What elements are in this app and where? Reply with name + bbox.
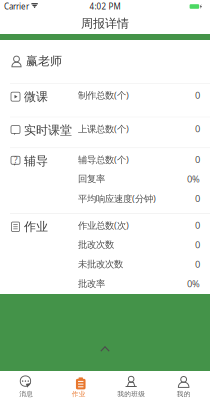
- button[interactable]: 消息: [0, 371, 52, 400]
- staticText: 赢老师: [26, 54, 62, 68]
- staticText: 制作总数(个): [78, 89, 129, 101]
- staticText: 0%: [187, 277, 200, 290]
- staticText: 未批改次数: [78, 258, 123, 270]
- staticText: 微课: [24, 89, 48, 104]
- staticText: 作业: [24, 219, 48, 234]
- staticText: 0: [195, 89, 200, 101]
- staticText: 我的班级: [117, 390, 145, 398]
- staticText: 我的: [177, 390, 191, 398]
- button[interactable]: 作业: [52, 371, 105, 400]
- staticText: 周报详情: [81, 16, 129, 31]
- staticText: 上课总数(个): [78, 123, 129, 135]
- staticText: 批改率: [78, 278, 105, 289]
- staticText: 0: [195, 123, 200, 135]
- staticText: 实时课堂: [24, 123, 72, 138]
- staticText: ?: [14, 155, 17, 166]
- button[interactable]: 我的: [157, 371, 210, 400]
- staticText: 0: [195, 153, 200, 166]
- staticText: 辅导: [24, 154, 48, 168]
- staticText: 0: [195, 238, 200, 251]
- staticText: 0: [195, 258, 200, 270]
- staticText: 0: [195, 219, 200, 231]
- staticText: 批改次数: [78, 239, 114, 250]
- staticText: 4:02 PM: [89, 1, 120, 12]
- button[interactable]: 我的班级: [105, 371, 157, 400]
- staticText: 回复率: [78, 173, 105, 185]
- staticText: 0%: [187, 173, 200, 185]
- staticText: 消息: [19, 390, 33, 398]
- staticText: 作业总数(次): [78, 219, 129, 231]
- staticText: 辅导总数(个): [78, 153, 129, 166]
- staticText: 平均响应速度(分钟): [78, 192, 156, 205]
- staticText: Carrier: [4, 1, 29, 12]
- staticText: 0: [195, 192, 200, 205]
- staticText: 作业: [72, 390, 86, 398]
